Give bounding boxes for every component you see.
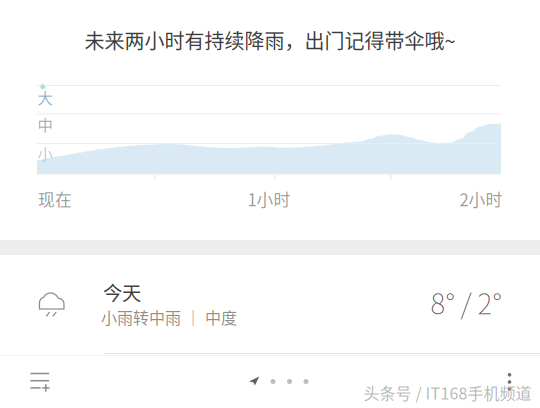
staticText: 头条号 / IT168手机频道	[363, 381, 531, 404]
staticText: 2小时	[459, 187, 502, 211]
staticText: 现在	[38, 187, 72, 211]
staticText: 大	[37, 86, 52, 108]
button[interactable]: 今天	[0, 256, 540, 353]
staticText: 今天	[103, 278, 141, 306]
staticText: 中	[37, 113, 52, 135]
staticText: 未来两小时有持续降雨，出门记得带伞哦~	[84, 25, 455, 54]
button[interactable]: Add city	[0, 354, 80, 408]
staticText: 小雨转中雨 │ 中度	[101, 305, 237, 329]
button[interactable]: Current location	[232, 354, 276, 408]
staticText: 小	[37, 142, 52, 164]
staticText: 8° / 2°	[430, 282, 501, 322]
button[interactable]: More	[487, 354, 531, 408]
staticText: 1小时	[247, 187, 290, 211]
